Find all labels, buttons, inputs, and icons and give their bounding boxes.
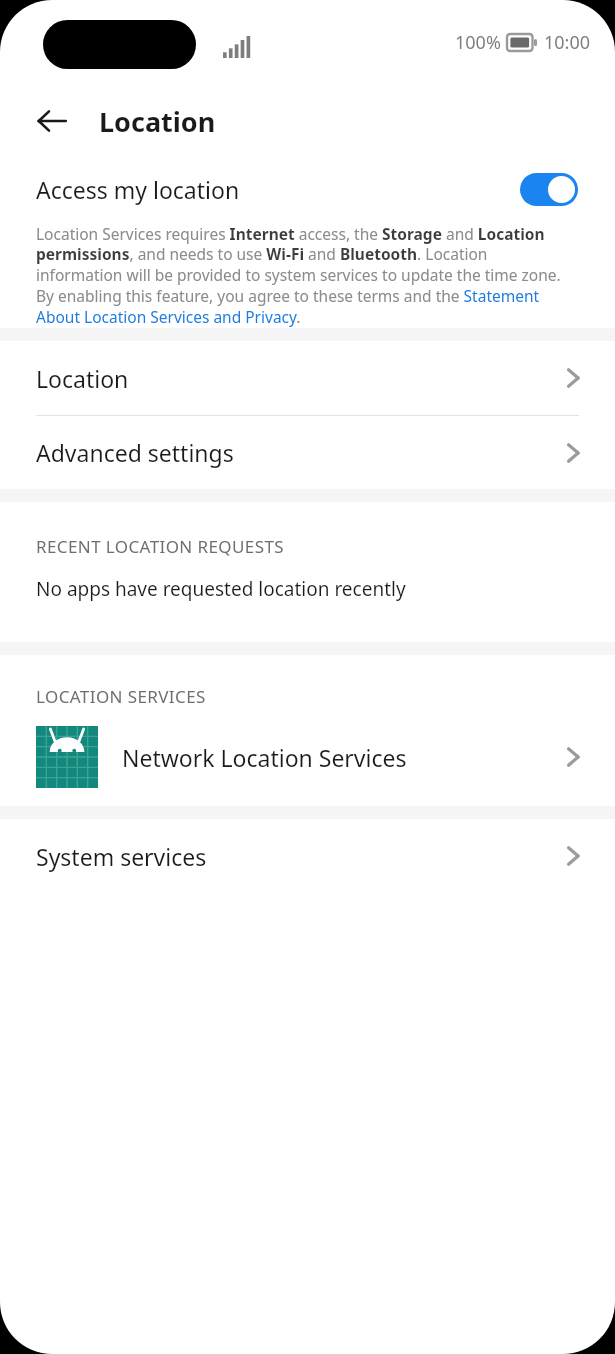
staticText: No apps have requested location recently bbox=[36, 576, 406, 602]
button[interactable]: Location bbox=[0, 341, 615, 415]
button[interactable]: Access my location toggle bbox=[520, 173, 578, 206]
staticText: System services bbox=[36, 841, 565, 872]
button[interactable]: Advanced settings bbox=[0, 416, 615, 489]
staticText: Network Location Services bbox=[122, 742, 565, 773]
button[interactable]: Access my location bbox=[0, 158, 615, 220]
staticText: LOCATION SERVICES bbox=[36, 685, 615, 708]
staticText: Access my location bbox=[36, 174, 520, 205]
staticText: Advanced settings bbox=[36, 437, 565, 468]
staticText: Location Services requires Internet acce… bbox=[36, 223, 577, 328]
button[interactable]: Back bbox=[25, 94, 79, 148]
button[interactable]: System services bbox=[0, 819, 615, 893]
staticText: Location bbox=[99, 103, 216, 140]
staticText: 10:00 bbox=[544, 30, 591, 55]
staticText: RECENT LOCATION REQUESTS bbox=[36, 535, 615, 558]
button[interactable]: Network Location Services bbox=[0, 708, 615, 806]
staticText: 100% bbox=[455, 30, 501, 55]
staticText: Location bbox=[36, 363, 565, 394]
